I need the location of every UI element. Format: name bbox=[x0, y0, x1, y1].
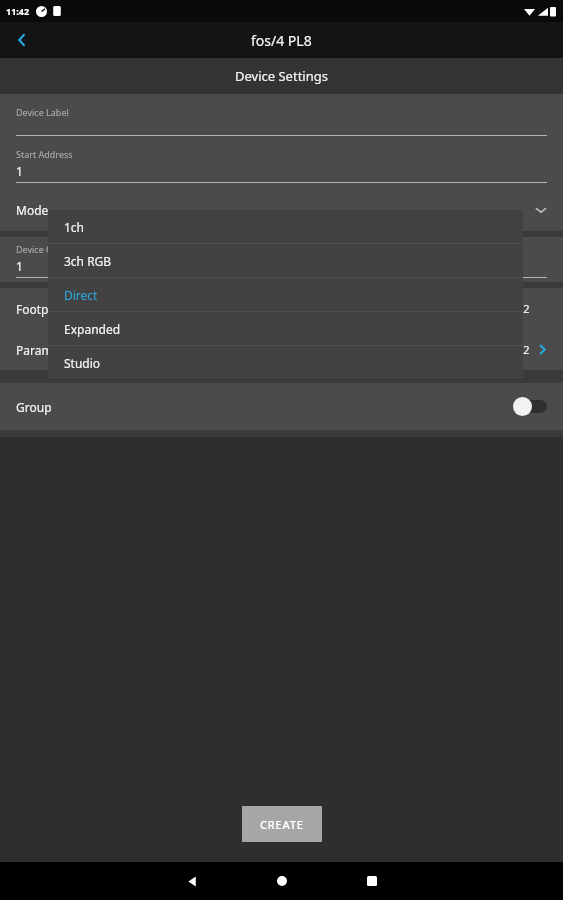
staticText: Mode bbox=[16, 202, 49, 218]
staticText: fos/4 PL8 bbox=[251, 31, 312, 50]
button[interactable]: Device Label bbox=[16, 106, 547, 136]
button[interactable]: 1ch bbox=[48, 210, 523, 243]
staticText: Footprint bbox=[16, 301, 69, 317]
button[interactable]: Back bbox=[168, 862, 216, 900]
staticText: 1ch bbox=[64, 219, 85, 235]
button[interactable]: Device Quantity bbox=[16, 243, 547, 278]
button[interactable]: CREATE bbox=[242, 806, 322, 842]
button[interactable]: Studio bbox=[48, 346, 523, 379]
staticText: Device Settings bbox=[235, 67, 328, 85]
staticText: 11:42 bbox=[6, 5, 30, 17]
staticText: CREATE bbox=[260, 817, 304, 832]
staticText: Studio bbox=[64, 355, 101, 371]
button[interactable]: Back bbox=[0, 22, 44, 58]
button[interactable]: Mode bbox=[0, 193, 563, 227]
button[interactable]: Group bbox=[0, 383, 563, 430]
staticText: Device Label bbox=[16, 106, 69, 118]
staticText: Parameters bbox=[16, 342, 82, 358]
staticText: Group bbox=[16, 399, 52, 415]
staticText: Device Quantity bbox=[16, 243, 83, 255]
button[interactable]: Start Address bbox=[16, 148, 547, 183]
button[interactable]: Expanded bbox=[48, 312, 523, 345]
staticText: 12 bbox=[517, 342, 530, 357]
button[interactable]: Footprint bbox=[0, 288, 563, 329]
button[interactable]: Recent apps bbox=[348, 862, 396, 900]
button[interactable]: Direct bbox=[48, 278, 523, 311]
staticText: Direct bbox=[64, 287, 98, 303]
staticText: 1 bbox=[16, 258, 23, 274]
button[interactable]: Home bbox=[258, 862, 306, 900]
button[interactable]: Parameters bbox=[0, 329, 563, 370]
button[interactable]: 3ch RGB bbox=[48, 244, 523, 277]
staticText: 1 bbox=[16, 163, 23, 179]
staticText: 3ch RGB bbox=[64, 253, 112, 269]
staticText: 12 bbox=[517, 301, 530, 316]
staticText: Expanded bbox=[64, 321, 121, 337]
staticText: Start Address bbox=[16, 148, 73, 160]
